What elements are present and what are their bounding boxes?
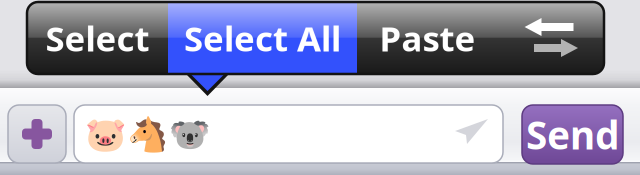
- staticText: Select: [45, 15, 149, 61]
- button[interactable]: Send: [522, 105, 623, 164]
- staticText: Select All: [184, 15, 341, 61]
- button[interactable]: More: [498, 2, 604, 74]
- button[interactable]: Add attachment: [8, 105, 66, 163]
- button[interactable]: 🐷🐴🐨: [74, 105, 503, 163]
- staticText: Send: [526, 109, 619, 160]
- staticText: Paste: [379, 15, 475, 61]
- button[interactable]: Select All: [168, 2, 357, 74]
- button[interactable]: Paste: [357, 2, 498, 74]
- staticText: 🐷🐴🐨: [85, 116, 211, 154]
- button[interactable]: Select: [27, 2, 168, 74]
